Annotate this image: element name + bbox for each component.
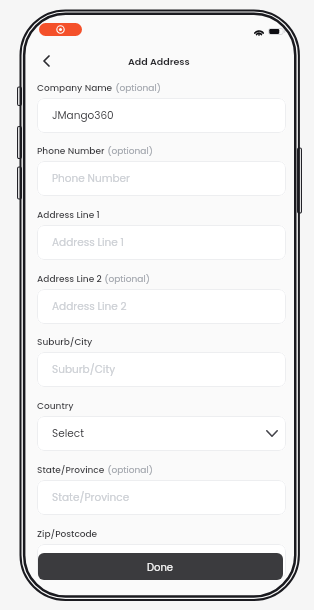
button[interactable]: Phone Number <box>37 161 286 196</box>
button[interactable]: Done <box>38 553 283 580</box>
staticText: Select <box>52 426 84 441</box>
staticText: Zip/Postcode <box>37 528 98 541</box>
staticText: Add Address <box>128 55 190 68</box>
staticText: Address Line 1 <box>37 209 100 222</box>
staticText: Done <box>147 560 174 574</box>
staticText: State/Province <box>37 464 105 477</box>
staticText: Phone Number <box>52 171 130 186</box>
staticText: Suburb/City <box>52 362 116 377</box>
staticText: (optional) <box>105 145 153 158</box>
staticText: Company Name <box>37 82 113 95</box>
button[interactable]: Address Line 1 <box>37 225 286 260</box>
staticText: (optional) <box>102 273 150 286</box>
button[interactable]: JMango360 <box>37 98 286 133</box>
staticText: Suburb/City <box>37 336 93 349</box>
staticText: (optional) <box>113 82 161 95</box>
staticText: Address Line 1 <box>52 235 124 250</box>
button[interactable]: Select <box>37 416 286 451</box>
staticText: State/Province <box>52 490 130 505</box>
button[interactable]: Address Line 2 <box>37 289 286 324</box>
staticText: (optional) <box>105 464 153 477</box>
button[interactable]: Back <box>33 48 59 74</box>
button[interactable]: Suburb/City <box>37 352 286 387</box>
staticText: Country <box>37 400 74 413</box>
staticText: Address Line 2 <box>37 273 102 286</box>
button[interactable]: Zip/Postcode <box>37 544 286 579</box>
staticText: JMango360 <box>52 108 114 123</box>
staticText: Phone Number <box>37 145 105 158</box>
staticText: Address Line 2 <box>52 299 127 314</box>
button[interactable]: State/Province <box>37 480 286 515</box>
